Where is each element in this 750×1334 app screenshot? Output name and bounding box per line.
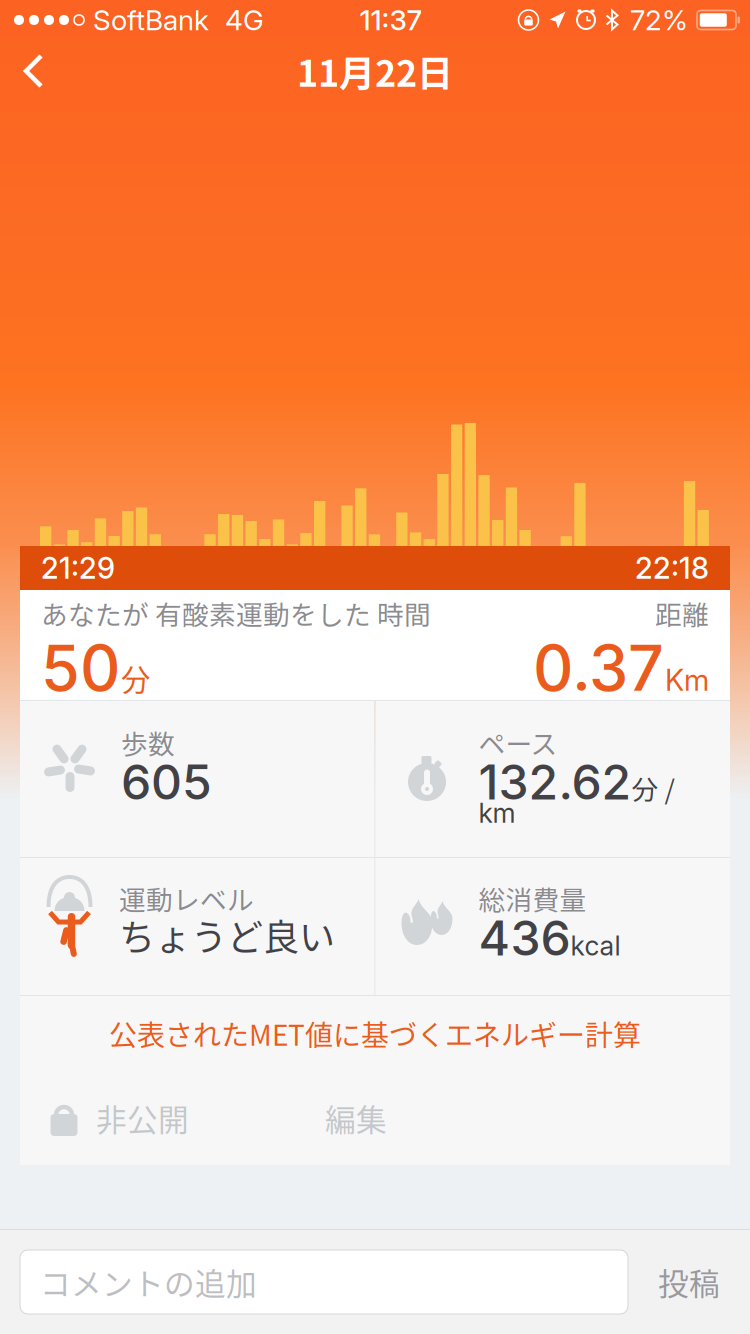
staticText: ペース [478, 723, 557, 762]
staticText: 分 / [631, 769, 674, 807]
button[interactable]: コメントの追加 [20, 1250, 628, 1314]
button[interactable]: 投稿 [628, 1250, 746, 1314]
button[interactable]: 編集 [203, 1071, 427, 1165]
button[interactable]: 公表されたMET値に基づくエネルギー計算 [20, 996, 730, 1071]
staticText: コメントの追加 [40, 1260, 257, 1304]
staticText: 11月22日 [297, 45, 453, 97]
staticText: SoftBank [93, 3, 209, 37]
staticText: 総消費量 [478, 879, 586, 918]
staticText: kcal [570, 930, 620, 962]
staticText: 21:29 [41, 550, 115, 586]
staticText: 72% [630, 3, 688, 37]
staticText: 22:18 [635, 550, 709, 586]
staticText: Km [665, 662, 709, 698]
staticText: ちょうど良い [119, 909, 335, 961]
staticText: 分 [121, 657, 150, 699]
staticText: km [478, 797, 515, 829]
staticText: あなたが 有酸素運動をした 時間 [41, 594, 431, 632]
staticText: 投稿 [658, 1260, 720, 1304]
staticText: 436 [478, 909, 570, 967]
staticText: 公表されたMET値に基づくエネルギー計算 [109, 1013, 641, 1054]
staticText: 605 [121, 753, 212, 811]
staticText: 運動レベル [119, 879, 254, 918]
staticText: 50 [41, 630, 120, 706]
button[interactable]: 非公開 [20, 1071, 203, 1165]
staticText: 11:37 [359, 3, 422, 37]
staticText: 132.62 [478, 753, 631, 811]
staticText: 0.37 [533, 630, 664, 706]
button[interactable]: Back [0, 41, 70, 101]
staticText: 編集 [325, 1096, 387, 1140]
staticText: 4G [225, 3, 264, 37]
staticText: 歩数 [121, 723, 175, 762]
staticText: 距離 [655, 594, 709, 632]
staticText: 非公開 [96, 1096, 189, 1140]
